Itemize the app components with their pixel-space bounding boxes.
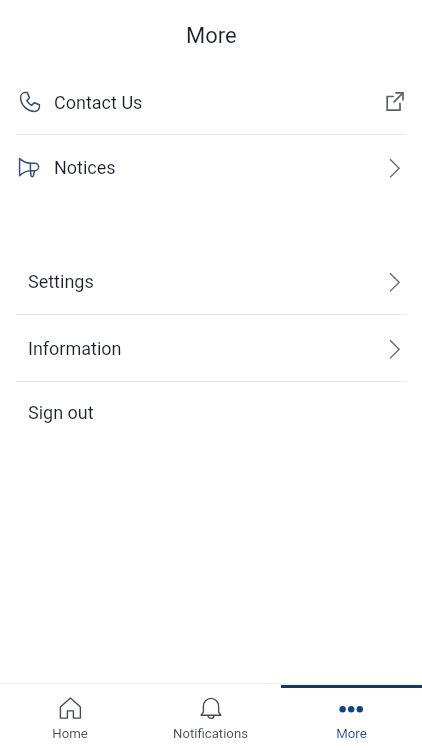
staticText: Home (52, 726, 88, 741)
other: Open Settings (382, 269, 406, 293)
staticText: Sign out (28, 402, 94, 423)
button[interactable]: Information (0, 315, 422, 381)
button[interactable]: Settings (0, 248, 422, 314)
other: Open Information (382, 336, 406, 360)
button[interactable]: Home (0, 683, 140, 750)
button[interactable]: Notices (0, 135, 422, 199)
staticText: Contact Us (54, 92, 143, 113)
staticText: Settings (28, 271, 94, 292)
other: Open Notices (382, 155, 406, 179)
button[interactable]: More (281, 683, 422, 750)
staticText: Information (28, 338, 122, 359)
other: Opens in an external app (382, 90, 406, 114)
button[interactable]: Notifications (140, 683, 281, 750)
button[interactable]: Sign out (0, 382, 422, 442)
staticText: Notifications (173, 726, 248, 741)
staticText: More (336, 726, 367, 741)
staticText: Notices (54, 157, 116, 178)
staticText: More (186, 23, 237, 49)
button[interactable]: Contact Us (0, 70, 422, 134)
